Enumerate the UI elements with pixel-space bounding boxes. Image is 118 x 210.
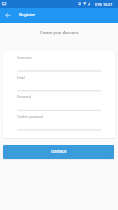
staticText: CONTINUE [51, 150, 67, 154]
staticText: 51% 10:37 [95, 2, 113, 7]
staticText: Email [17, 76, 25, 80]
staticText: Register [19, 12, 36, 18]
button[interactable]: Back [1, 9, 15, 23]
staticText: Password [17, 95, 31, 99]
button[interactable]: CONTINUE [3, 145, 114, 159]
staticText: Username [17, 56, 32, 60]
staticText: Confirm password [17, 115, 43, 119]
staticText: Create your Account [0, 30, 118, 35]
